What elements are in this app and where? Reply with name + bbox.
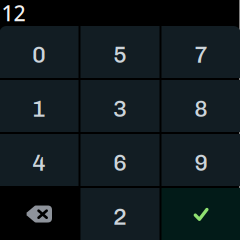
button[interactable]: 4 — [0, 134, 78, 186]
button[interactable]: 9 — [161, 134, 240, 186]
staticText: 3 — [113, 95, 127, 122]
button[interactable]: 5 — [80, 26, 159, 78]
staticText: 7 — [194, 41, 208, 68]
staticText: 5 — [113, 41, 127, 68]
button[interactable]: Delete — [0, 188, 78, 240]
staticText: 8 — [194, 95, 208, 122]
button[interactable]: 8 — [161, 80, 240, 132]
button[interactable]: 0 — [0, 26, 78, 78]
staticText: 6 — [113, 149, 127, 176]
staticText: 9 — [194, 149, 208, 176]
button[interactable]: 7 — [161, 26, 240, 78]
button[interactable]: Confirm — [161, 188, 240, 240]
staticText: 1 — [32, 95, 46, 122]
staticText: 4 — [32, 149, 46, 176]
button[interactable]: 6 — [80, 134, 159, 186]
button[interactable]: 3 — [80, 80, 159, 132]
staticText: 2 — [113, 203, 127, 230]
button[interactable]: 1 — [0, 80, 78, 132]
button[interactable]: 2 — [80, 188, 159, 240]
staticText: 12 — [1, 0, 25, 27]
staticText: 0 — [32, 41, 46, 68]
